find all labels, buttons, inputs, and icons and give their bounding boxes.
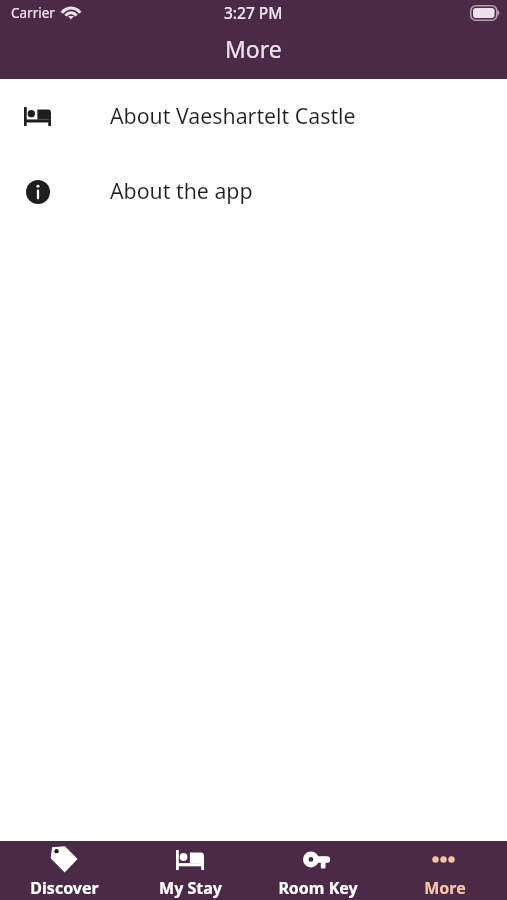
staticText: Carrier xyxy=(11,4,55,22)
staticText: Discover xyxy=(30,877,99,899)
staticText: My Stay xyxy=(159,877,222,899)
button[interactable]: About Vaeshartelt Castle xyxy=(0,79,507,154)
staticText: 3:27 PM xyxy=(224,2,283,23)
other: Wi-Fi signal xyxy=(61,5,81,19)
button[interactable]: Discover xyxy=(0,841,126,900)
button[interactable]: My Stay xyxy=(126,841,253,900)
button[interactable]: About the app xyxy=(0,154,507,229)
staticText: About Vaeshartelt Castle xyxy=(110,101,356,130)
staticText: Room Key xyxy=(278,877,358,899)
staticText: About the app xyxy=(110,176,253,205)
button[interactable]: Room Key xyxy=(253,841,380,900)
staticText: More xyxy=(424,877,466,899)
staticText: More xyxy=(225,33,282,64)
button[interactable]: More xyxy=(380,841,507,900)
other: Battery full xyxy=(470,5,500,21)
